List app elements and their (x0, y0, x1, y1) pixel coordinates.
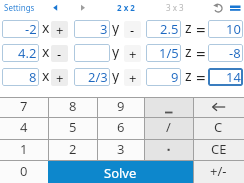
button[interactable]: -8 (208, 44, 243, 62)
staticText: 1 (20, 140, 28, 158)
staticText: z (185, 42, 192, 60)
staticText: 2 x 2 (117, 2, 135, 13)
staticText: +/- (210, 162, 227, 180)
button[interactable] (230, 5, 241, 12)
button[interactable] (74, 44, 110, 62)
button[interactable] (193, 97, 244, 117)
staticText: 2 (69, 140, 77, 158)
staticText: C (214, 118, 223, 136)
button[interactable]: 5 (48, 117, 97, 139)
staticText: 3 (100, 20, 108, 38)
button[interactable]: 2.5 (146, 20, 181, 38)
staticText: = (196, 66, 206, 84)
staticText: y (112, 18, 120, 36)
staticText: z (185, 66, 192, 84)
button[interactable] (144, 139, 193, 160)
staticText: 8 (69, 97, 77, 115)
button[interactable]: Settings (4, 2, 35, 13)
button[interactable]: + (124, 45, 141, 62)
staticText: 7 (20, 97, 28, 115)
staticText: + (129, 45, 137, 62)
button[interactable] (51, 2, 61, 14)
staticText: + (56, 21, 64, 38)
button[interactable]: +/- (193, 160, 244, 183)
button[interactable]: 10 (208, 20, 243, 38)
button[interactable]: 14 (208, 68, 243, 86)
button[interactable]: 3 (97, 139, 144, 160)
staticText: + (129, 69, 137, 86)
button[interactable]: + (124, 69, 141, 86)
button[interactable] (79, 2, 89, 14)
button[interactable]: + (51, 21, 68, 38)
button[interactable]: 0 (0, 160, 48, 183)
staticText: Settings (4, 2, 35, 13)
button[interactable]: 3 (74, 20, 110, 38)
button[interactable] (212, 2, 225, 14)
button[interactable]: 7 (0, 97, 48, 117)
staticText: y (112, 42, 120, 60)
button[interactable]: - (124, 21, 141, 38)
staticText: 0 (20, 162, 28, 180)
button[interactable]: -2 (2, 20, 39, 38)
staticText: -8 (229, 44, 241, 62)
button[interactable]: 1/5 (146, 44, 181, 62)
button[interactable]: 9 (146, 68, 181, 86)
button[interactable]: 3 x 3 (166, 2, 184, 13)
button[interactable]: 9 (97, 97, 144, 117)
staticText: -2 (25, 20, 37, 38)
staticText: 5 (69, 118, 77, 136)
staticText: = (196, 18, 206, 36)
button[interactable]: 4 (0, 117, 48, 139)
staticText: z (185, 18, 192, 36)
staticText: = (196, 42, 206, 60)
button[interactable]: / (144, 117, 193, 139)
button[interactable]: 2 (48, 139, 97, 160)
button[interactable]: 2 x 2 (117, 2, 135, 13)
staticText: CE (211, 140, 227, 158)
staticText: 4.2 (18, 44, 37, 62)
staticText: x (42, 66, 50, 84)
button[interactable]: 4.2 (2, 44, 39, 62)
button[interactable]: CE (193, 139, 244, 160)
button[interactable] (144, 97, 193, 117)
staticText: Solve (104, 164, 137, 182)
button[interactable]: 8 (48, 97, 97, 117)
staticText: 3 (117, 140, 125, 158)
staticText: 10 (226, 20, 241, 38)
staticText: - (57, 45, 62, 62)
staticText: 2/3 (88, 68, 108, 86)
staticText: + (56, 69, 64, 86)
staticText: 4 (20, 118, 28, 136)
button[interactable]: 8 (2, 68, 39, 86)
staticText: x (42, 42, 50, 60)
staticText: 2.5 (160, 20, 179, 38)
staticText: / (166, 118, 171, 136)
staticText: 6 (117, 118, 125, 136)
staticText: 9 (171, 68, 179, 86)
staticText: 9 (117, 97, 125, 115)
button[interactable]: - (51, 45, 68, 62)
button[interactable]: 6 (97, 117, 144, 139)
staticText: 14 (226, 68, 241, 86)
staticText: - (130, 21, 135, 38)
button[interactable]: C (193, 117, 244, 139)
staticText: 3 x 3 (166, 2, 184, 13)
staticText: y (112, 66, 120, 84)
button[interactable]: 2/3 (74, 68, 110, 86)
staticText: x (42, 18, 50, 36)
staticText: 1/5 (159, 44, 179, 62)
staticText: 8 (29, 68, 37, 86)
button[interactable]: 1 (0, 139, 48, 160)
button[interactable]: + (51, 69, 68, 86)
button[interactable]: Solve (48, 161, 193, 183)
